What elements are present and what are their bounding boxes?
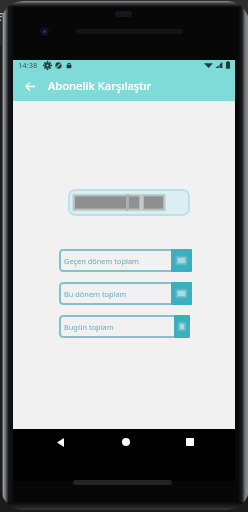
button[interactable]: Recent apps (177, 429, 203, 455)
staticText: 14:38 (18, 60, 38, 70)
button[interactable]: Back (47, 429, 73, 455)
staticText: Abonelik Karşılaştır (48, 78, 152, 93)
button[interactable]: Bu dönem toplam (59, 282, 192, 305)
staticText: Bu dönem toplam (64, 289, 127, 299)
staticText: er (0, 6, 11, 25)
button[interactable]: Geçen dönem toplam (59, 249, 192, 272)
staticText: Geçen dönem toplam (64, 256, 139, 266)
button[interactable]: Back (18, 74, 42, 98)
staticText: Bugün toplam (64, 322, 114, 332)
button[interactable]: Home (113, 429, 139, 455)
button[interactable]: Bugün toplam (59, 315, 190, 338)
